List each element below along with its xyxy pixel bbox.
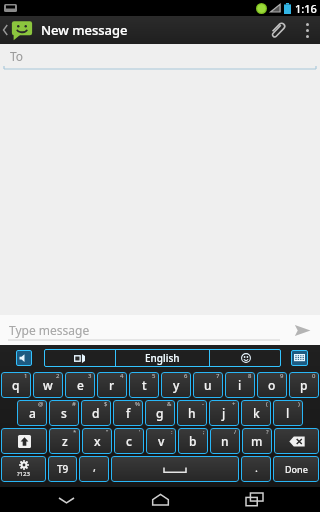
staticText: New message bbox=[41, 21, 128, 39]
button[interactable]: English bbox=[116, 349, 209, 367]
staticText: Done bbox=[285, 463, 308, 475]
staticText: g bbox=[156, 405, 164, 421]
button[interactable]: p bbox=[289, 372, 319, 398]
button[interactable]: r bbox=[97, 372, 127, 398]
button[interactable]: Attach bbox=[260, 16, 294, 44]
button[interactable]: v bbox=[146, 428, 176, 454]
button[interactable]: Emoji bbox=[210, 349, 281, 367]
button[interactable]: n bbox=[210, 428, 240, 454]
button[interactable]: h bbox=[177, 400, 207, 426]
staticText: s bbox=[61, 405, 67, 421]
button[interactable]: f bbox=[113, 400, 143, 426]
staticText: % bbox=[135, 400, 140, 408]
staticText: ' bbox=[139, 428, 141, 436]
button[interactable]: Navigate up bbox=[0, 16, 37, 44]
staticText: c bbox=[126, 433, 132, 449]
button[interactable]: m bbox=[242, 428, 272, 454]
staticText: 2 bbox=[56, 372, 60, 380]
button[interactable]: s bbox=[49, 400, 79, 426]
staticText: 0 bbox=[312, 372, 316, 380]
staticText: d bbox=[92, 405, 100, 421]
button[interactable]: z bbox=[49, 428, 80, 454]
button[interactable]: y bbox=[161, 372, 191, 398]
button[interactable]: T9 bbox=[48, 456, 77, 482]
staticText: & bbox=[167, 400, 172, 408]
staticText: To bbox=[10, 48, 24, 64]
button[interactable]: o bbox=[257, 372, 287, 398]
staticText: # bbox=[72, 400, 76, 408]
staticText: r bbox=[109, 377, 115, 393]
staticText: ?123 bbox=[17, 470, 30, 478]
button[interactable]: e bbox=[65, 372, 95, 398]
staticText: w bbox=[43, 377, 53, 393]
button[interactable]: Home bbox=[132, 487, 188, 512]
staticText: 8 bbox=[248, 372, 252, 380]
button[interactable]: w bbox=[33, 372, 63, 398]
staticText: ) bbox=[298, 400, 300, 408]
button[interactable]: j bbox=[209, 400, 239, 426]
button[interactable]: Shift bbox=[1, 428, 47, 454]
staticText: 4 bbox=[120, 372, 124, 380]
button[interactable]: . bbox=[241, 456, 271, 482]
staticText: b bbox=[189, 433, 197, 449]
button[interactable]: b bbox=[178, 428, 208, 454]
staticText: 1 bbox=[24, 372, 28, 380]
staticText: k bbox=[253, 405, 260, 421]
staticText: 7 bbox=[216, 372, 220, 380]
button[interactable]: Hide keyboard bbox=[38, 487, 94, 512]
staticText: $ bbox=[104, 400, 108, 408]
button[interactable]: a bbox=[17, 400, 47, 426]
staticText: @ bbox=[38, 400, 44, 408]
staticText: ; bbox=[203, 428, 205, 436]
button[interactable]: g bbox=[145, 400, 175, 426]
button[interactable]: i bbox=[225, 372, 255, 398]
staticText: f bbox=[126, 405, 131, 421]
button[interactable]: Recent apps bbox=[226, 487, 282, 512]
staticText: 3 bbox=[88, 372, 92, 380]
button[interactable]: , bbox=[79, 456, 109, 482]
button[interactable]: More options bbox=[294, 16, 320, 44]
staticText: 6 bbox=[184, 372, 188, 380]
staticText: 9 bbox=[280, 372, 284, 380]
button[interactable]: x bbox=[82, 428, 112, 454]
staticText: , bbox=[93, 459, 96, 474]
staticText: - bbox=[202, 400, 204, 408]
staticText: u bbox=[204, 377, 212, 393]
staticText: : bbox=[171, 428, 173, 436]
staticText: Type message bbox=[9, 322, 90, 338]
staticText: ( bbox=[266, 400, 268, 408]
staticText: x bbox=[94, 433, 101, 449]
button[interactable]: d bbox=[81, 400, 111, 426]
button[interactable]: q bbox=[1, 372, 31, 398]
staticText: / bbox=[234, 428, 237, 436]
staticText: z bbox=[62, 433, 68, 449]
button[interactable]: k bbox=[241, 400, 271, 426]
staticText: q bbox=[12, 377, 20, 393]
staticText: " bbox=[106, 428, 109, 436]
staticText: . bbox=[255, 460, 258, 475]
button[interactable]: t bbox=[129, 372, 159, 398]
staticText: y bbox=[173, 377, 180, 393]
button[interactable]: Settings and symbols bbox=[1, 456, 46, 482]
button[interactable]: Delete bbox=[274, 428, 319, 454]
button[interactable]: l bbox=[273, 400, 303, 426]
staticText: ? bbox=[266, 428, 269, 436]
button[interactable]: c bbox=[114, 428, 144, 454]
button[interactable]: Done bbox=[273, 456, 319, 482]
staticText: i bbox=[238, 377, 242, 393]
staticText: j bbox=[222, 405, 226, 421]
button[interactable]: Space bbox=[111, 456, 239, 482]
staticText: e bbox=[77, 377, 84, 393]
staticText: l bbox=[286, 405, 290, 421]
staticText: T9 bbox=[57, 462, 69, 476]
staticText: p bbox=[300, 377, 308, 393]
button[interactable]: Send bbox=[284, 315, 320, 345]
staticText: English bbox=[145, 351, 180, 365]
staticText: a bbox=[29, 405, 36, 421]
staticText: h bbox=[188, 405, 196, 421]
button[interactable]: Voice input bbox=[16, 350, 32, 366]
button[interactable]: Switch keyboard bbox=[291, 350, 308, 366]
button[interactable]: To bbox=[0, 44, 320, 71]
button[interactable]: u bbox=[193, 372, 223, 398]
button[interactable]: Clipboard bbox=[44, 349, 115, 367]
